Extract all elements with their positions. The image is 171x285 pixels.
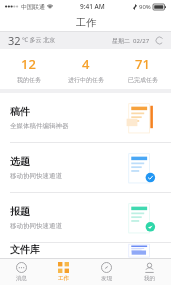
staticText: 报题 — [10, 205, 30, 218]
staticText: 全媒体稿件编辑神器 — [10, 122, 69, 130]
button[interactable]: 文件库 — [0, 243, 171, 258]
button[interactable]: 工作 — [42, 259, 85, 285]
staticText: 我的任务 — [17, 76, 41, 84]
other: Refresh — [156, 37, 163, 44]
staticText: 稿件 — [10, 105, 30, 118]
button[interactable]: 稿件 — [0, 93, 171, 142]
staticText: 已完成任务 — [128, 76, 158, 84]
button[interactable]: 报题 — [0, 193, 171, 242]
staticText: 工作 — [76, 16, 96, 29]
staticText: 移动协同快速通道 — [10, 172, 62, 180]
staticText: 星期二 02/27 — [112, 37, 150, 45]
button[interactable]: 71 — [114, 49, 171, 89]
staticText: 90% — [139, 3, 151, 11]
staticText: 32 — [8, 33, 21, 48]
staticText: 移动协同快速通道 — [10, 222, 62, 230]
staticText: 选题 — [10, 155, 30, 168]
button[interactable]: 12 — [0, 49, 57, 89]
staticText: 消息 — [16, 275, 27, 282]
staticText: 9:41 AM — [80, 2, 105, 11]
button[interactable]: 发现 — [85, 259, 128, 285]
button[interactable]: 4 — [57, 49, 114, 89]
staticText: 发现 — [101, 275, 112, 282]
staticText: ℃ 多云 北京 — [22, 36, 56, 44]
staticText: 工作 — [58, 275, 69, 282]
button[interactable]: 我的 — [128, 259, 171, 285]
staticText: 4 — [82, 55, 90, 73]
button[interactable]: 消息 — [0, 259, 42, 285]
staticText: 12 — [21, 55, 36, 73]
staticText: 中国联通 — [21, 3, 45, 11]
staticText: 71 — [135, 55, 150, 73]
staticText: 文件库 — [10, 243, 40, 256]
staticText: 我的 — [144, 275, 155, 282]
button[interactable]: 选题 — [0, 143, 171, 192]
staticText: 进行中的任务 — [68, 76, 104, 84]
